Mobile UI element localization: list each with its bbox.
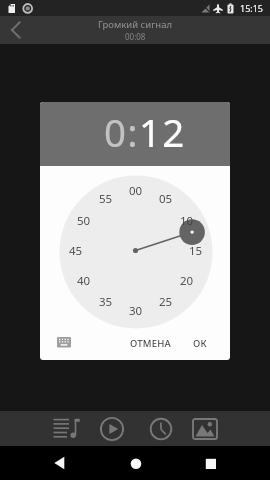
button[interactable] bbox=[181, 411, 229, 446]
staticText: 10 bbox=[180, 213, 194, 229]
staticText: 15 bbox=[189, 243, 203, 259]
staticText: Громкий сигнал bbox=[98, 18, 173, 31]
staticText: 25 bbox=[159, 294, 173, 310]
staticText: ОТМЕНА bbox=[130, 337, 171, 350]
button[interactable] bbox=[40, 446, 77, 480]
button[interactable] bbox=[88, 411, 136, 446]
staticText: 00:08 bbox=[125, 31, 146, 42]
staticText: 20 bbox=[180, 273, 194, 289]
staticText: 35 bbox=[99, 294, 113, 310]
staticText: ОК bbox=[193, 337, 207, 350]
button[interactable] bbox=[137, 411, 185, 446]
staticText: 55 bbox=[99, 191, 113, 207]
button[interactable] bbox=[117, 446, 154, 480]
button[interactable] bbox=[53, 333, 75, 351]
staticText: 12 bbox=[139, 106, 186, 158]
button[interactable] bbox=[0, 16, 34, 44]
staticText: 45 bbox=[69, 243, 83, 259]
staticText: 05 bbox=[159, 191, 173, 207]
staticText: 50 bbox=[77, 213, 91, 229]
staticText: 00 bbox=[129, 183, 143, 199]
button[interactable] bbox=[192, 446, 229, 480]
button[interactable]: ОК bbox=[182, 332, 218, 354]
button[interactable]: ОТМЕНА bbox=[117, 332, 184, 354]
staticText: 30 bbox=[129, 303, 143, 319]
staticText: 15:15 bbox=[240, 2, 264, 14]
button[interactable] bbox=[40, 411, 88, 446]
staticText: 0: bbox=[104, 106, 139, 158]
staticText: 40 bbox=[77, 273, 91, 289]
